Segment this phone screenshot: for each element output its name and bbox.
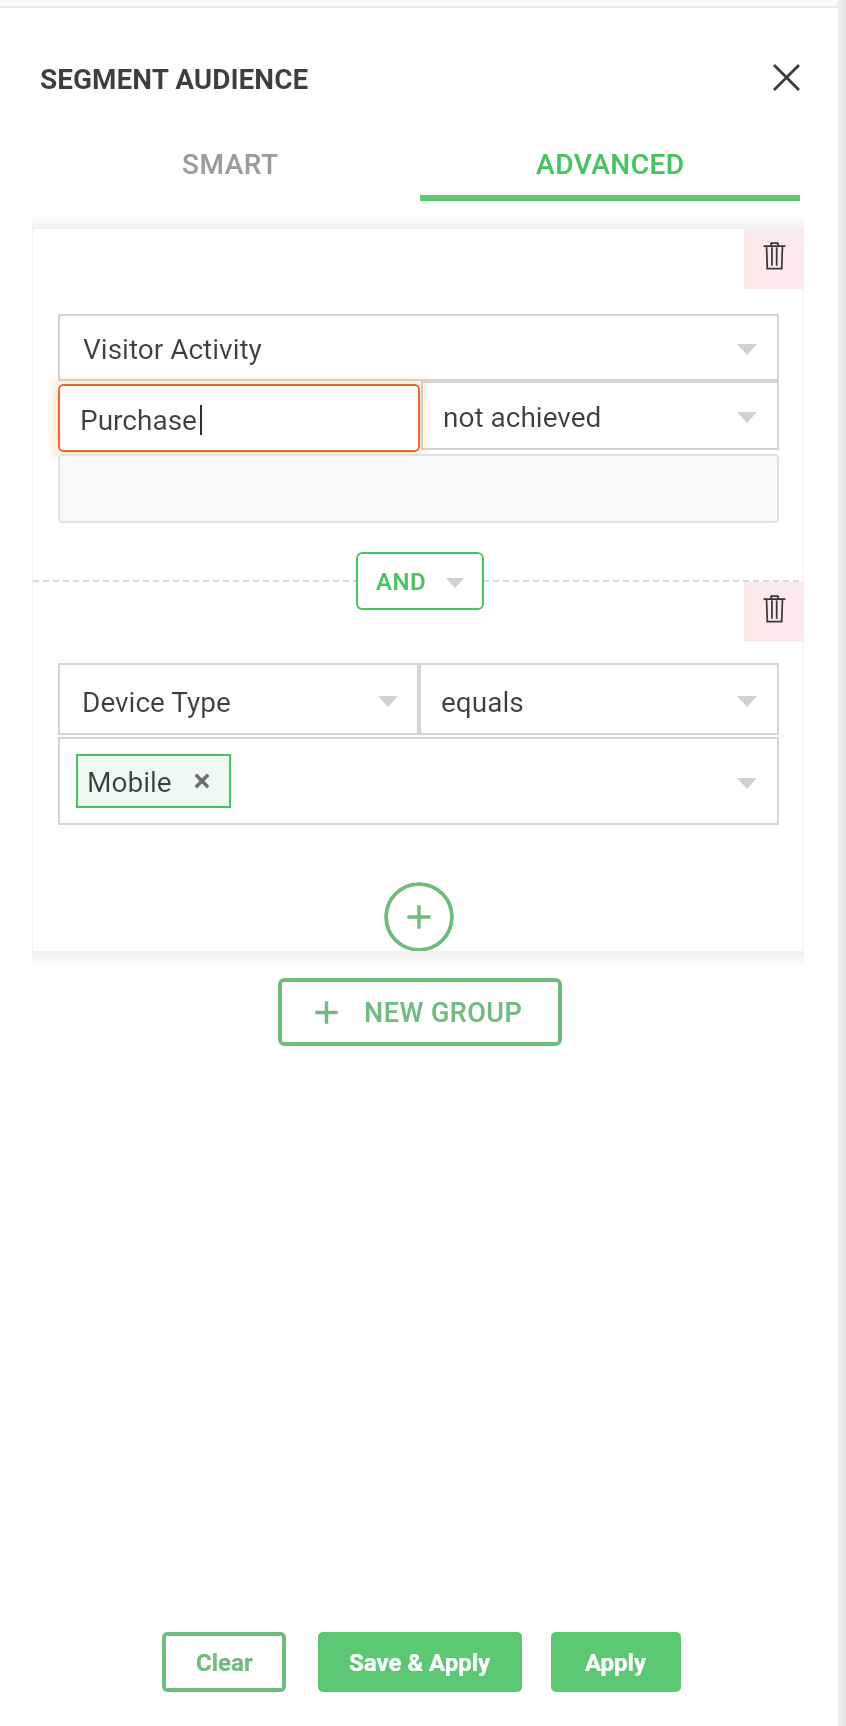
button[interactable]: Save & Apply [318,1632,522,1692]
staticText: Save & Apply [349,1649,491,1677]
button[interactable]: Delete group 2 [744,582,804,642]
button[interactable]: equals [419,663,779,735]
staticText: Apply [585,1649,647,1677]
staticText: Clear [196,1649,253,1677]
staticText: not achieved [443,401,602,434]
staticText: SEGMENT AUDIENCE [40,63,309,96]
button[interactable]: Clear [162,1632,286,1692]
button[interactable] [58,454,779,523]
button[interactable]: Delete group 1 [744,229,804,289]
staticText: Purchase [80,404,197,437]
button[interactable]: Purchase [58,384,420,452]
button[interactable]: SMART [40,129,420,201]
staticText: equals [441,686,524,719]
button[interactable]: Device Type [58,663,419,735]
staticText: SMART [182,148,279,181]
button[interactable]: Visitor Activity [58,314,779,381]
staticText: ADVANCED [536,148,685,181]
button[interactable]: Remove Mobile [194,773,210,789]
button[interactable]: Mobile [76,754,231,808]
button[interactable]: Apply [551,1632,681,1692]
button[interactable]: Mobile [58,737,779,825]
staticText: Visitor Activity [83,333,262,366]
button[interactable]: Close [757,48,816,107]
staticText: Device Type [82,686,231,719]
staticText: NEW GROUP [364,997,523,1029]
button[interactable]: AND [356,552,484,610]
staticText: Mobile [87,766,172,799]
button[interactable]: NEW GROUP [278,978,562,1046]
button[interactable]: ADVANCED [420,129,800,201]
staticText: AND [376,568,427,596]
button[interactable]: not achieved [421,381,779,450]
button[interactable]: Add condition [384,882,454,952]
